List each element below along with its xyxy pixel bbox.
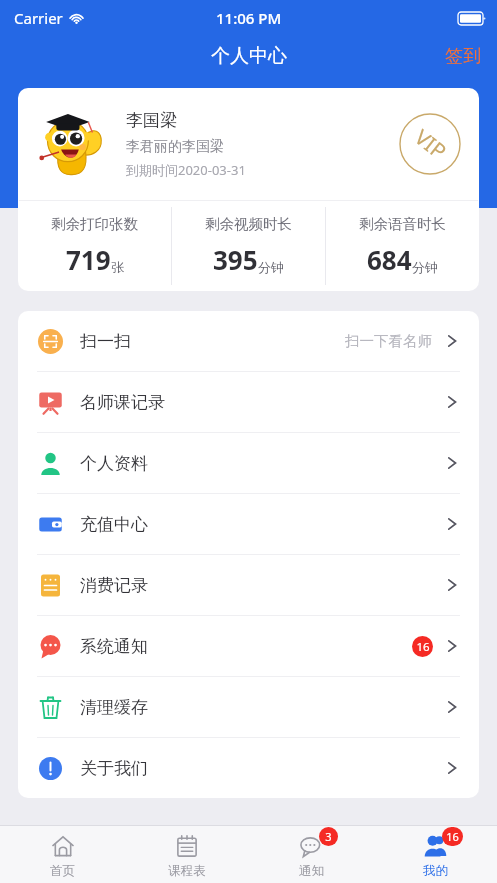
staticText: 16 — [446, 829, 459, 844]
staticText: 分钟 — [258, 259, 284, 275]
staticText: 名师课记录 — [80, 392, 165, 413]
button[interactable]: 剩余打印张数 — [18, 201, 171, 291]
button[interactable]: 消费记录 — [18, 555, 479, 615]
staticText: 395 — [213, 242, 258, 277]
button[interactable]: 充值中心 — [18, 494, 479, 554]
staticText: 关于我们 — [80, 758, 148, 779]
staticText: 分钟 — [412, 259, 438, 275]
staticText: 李君丽的李国梁 — [126, 138, 224, 156]
staticText: 系统通知 — [80, 636, 148, 657]
button[interactable]: 签到 — [429, 39, 497, 74]
button[interactable]: 16 — [373, 826, 497, 883]
staticText: 个人中心 — [211, 44, 287, 68]
button[interactable]: 清理缓存 — [18, 677, 479, 737]
staticText: 剩余视频时长 — [205, 215, 292, 233]
button[interactable]: 课程表 — [125, 826, 249, 883]
staticText: 个人资料 — [80, 453, 148, 474]
button[interactable]: 名师课记录 — [18, 372, 479, 432]
staticText: 16 — [416, 639, 430, 655]
staticText: 通知 — [299, 863, 324, 879]
staticText: 11:06 PM — [216, 8, 282, 28]
staticText: 719 — [66, 242, 111, 277]
button[interactable]: 李国梁 — [18, 88, 479, 200]
button[interactable]: 关于我们 — [18, 738, 479, 798]
staticText: 剩余打印张数 — [51, 215, 138, 233]
button[interactable]: 剩余语音时长 — [326, 201, 479, 291]
staticText: 我的 — [423, 863, 448, 879]
staticText: 扫一扫 — [80, 331, 131, 352]
staticText: 充值中心 — [80, 514, 148, 535]
staticText: 签到 — [445, 45, 481, 68]
staticText: Carrier — [14, 8, 63, 28]
staticText: 扫一下看名师 — [345, 332, 432, 350]
button[interactable]: 扫一扫 — [18, 311, 479, 371]
staticText: 课程表 — [168, 863, 206, 879]
staticText: 首页 — [50, 863, 75, 879]
staticText: 张 — [111, 259, 124, 275]
staticText: 清理缓存 — [80, 697, 148, 718]
staticText: 消费记录 — [80, 575, 148, 596]
button[interactable]: 3 — [249, 826, 373, 883]
staticText: 剩余语音时长 — [359, 215, 446, 233]
staticText: 李国梁 — [126, 110, 177, 131]
button[interactable]: 首页 — [0, 826, 125, 883]
staticText: 684 — [367, 242, 412, 277]
staticText: 到期时间2020-03-31 — [126, 161, 246, 179]
button[interactable]: 剩余视频时长 — [172, 201, 325, 291]
staticText: 3 — [325, 829, 332, 844]
button[interactable]: 系统通知 — [18, 616, 479, 676]
button[interactable]: 个人资料 — [18, 433, 479, 493]
staticText: VIP — [409, 123, 452, 166]
